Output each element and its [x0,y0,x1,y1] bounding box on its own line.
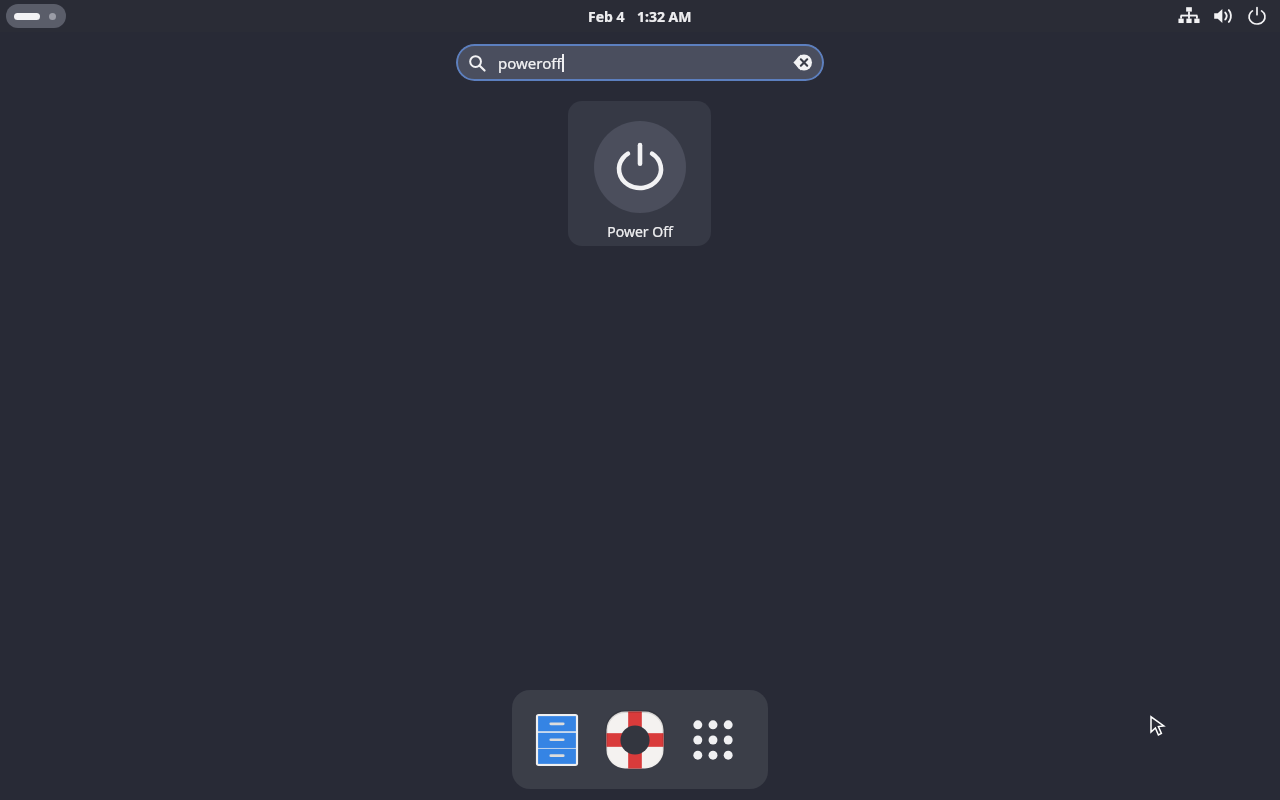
button[interactable]: Power Off [568,101,711,246]
staticText: Feb 4 [588,7,625,26]
staticText: 1:32 AM [637,7,692,26]
button[interactable]: Volume [1212,5,1234,27]
button[interactable]: Help [604,709,666,771]
staticText: Power Off [607,222,673,241]
button[interactable]: Power settings [1246,5,1268,27]
button[interactable]: Clear search [793,53,812,72]
staticText: poweroff [498,53,562,73]
button[interactable]: Show Applications [682,709,744,771]
button[interactable]: Network [1178,5,1200,27]
button[interactable]: Workspaces [6,4,66,28]
button[interactable]: Files [526,709,588,771]
button[interactable]: poweroff [456,44,824,81]
button[interactable]: Feb 4 [580,4,700,29]
